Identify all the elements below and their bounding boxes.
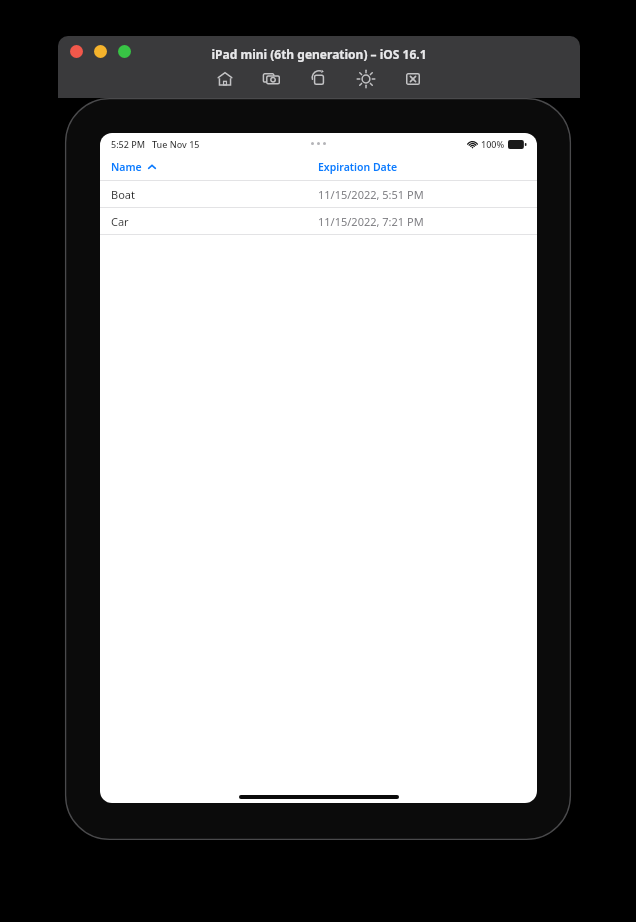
staticText: Car <box>111 214 129 229</box>
button[interactable]: Close <box>70 45 83 58</box>
staticText: Expiration Date <box>318 160 398 174</box>
button[interactable]: Boat <box>100 181 537 207</box>
staticText: iPad mini (6th generation) – iOS 16.1 <box>58 46 580 62</box>
staticText: 11/15/2022, 5:51 PM <box>318 187 424 202</box>
staticText: 5:52 PM <box>111 138 145 150</box>
button[interactable]: Screenshot <box>259 66 285 92</box>
button[interactable]: Appearance <box>353 66 379 92</box>
button[interactable]: Expiration Date <box>318 160 398 174</box>
button[interactable]: Rotate <box>306 66 332 92</box>
button[interactable]: Keyboard <box>400 66 426 92</box>
button[interactable]: Zoom <box>118 45 131 58</box>
staticText: 11/15/2022, 7:21 PM <box>318 214 424 229</box>
button[interactable]: Name <box>111 160 156 174</box>
button[interactable]: Minimize <box>94 45 107 58</box>
button[interactable]: Home <box>212 66 238 92</box>
staticText: Tue Nov 15 <box>152 138 200 150</box>
staticText: Boat <box>111 187 135 202</box>
staticText: 100% <box>481 138 505 150</box>
staticText: Name <box>111 160 142 174</box>
button[interactable]: Car <box>100 208 537 234</box>
